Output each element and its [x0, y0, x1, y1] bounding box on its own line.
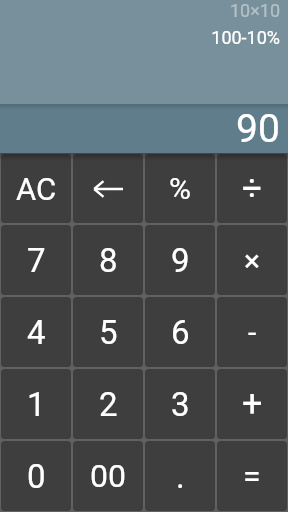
button[interactable]: Percent	[145, 154, 215, 223]
staticText: =	[243, 457, 261, 495]
staticText: 6	[171, 313, 190, 352]
staticText: +	[242, 383, 263, 425]
staticText: 2	[99, 385, 118, 424]
button[interactable]: 0	[1, 441, 71, 511]
staticText: 5	[99, 313, 118, 352]
staticText: 4	[27, 313, 46, 352]
staticText: 3	[171, 385, 190, 424]
button[interactable]: Minus	[217, 297, 287, 367]
button[interactable]: Multiply	[217, 225, 287, 295]
staticText: 90	[236, 106, 280, 152]
button[interactable]: 5	[73, 297, 143, 367]
button[interactable]: All clear	[1, 154, 71, 223]
button[interactable]: 7	[1, 225, 71, 295]
button[interactable]: 8	[73, 225, 143, 295]
staticText: 00	[90, 457, 126, 495]
staticText: 100-10%	[211, 27, 280, 48]
button[interactable]: Decimal point	[145, 441, 215, 511]
button[interactable]: Equals	[217, 441, 287, 511]
button[interactable]: 9	[145, 225, 215, 295]
staticText: 0	[27, 457, 46, 496]
button[interactable]: Double zero	[73, 441, 143, 511]
button[interactable]: 1	[1, 369, 71, 439]
button[interactable]: 3	[145, 369, 215, 439]
button[interactable]: 2	[73, 369, 143, 439]
staticText: ×	[244, 243, 261, 278]
staticText: ÷	[242, 168, 262, 209]
staticText: 9	[171, 241, 190, 280]
button[interactable]: Backspace	[73, 154, 143, 223]
staticText: AC	[16, 171, 57, 207]
staticText: 8	[99, 241, 118, 280]
staticText: %	[169, 171, 191, 206]
button[interactable]: Divide	[217, 154, 287, 223]
staticText: -	[248, 315, 257, 350]
staticText: 10×10	[229, 0, 280, 21]
staticText: 7	[27, 241, 46, 280]
staticText: .	[176, 457, 185, 496]
button[interactable]: 6	[145, 297, 215, 367]
button[interactable]: 4	[1, 297, 71, 367]
button[interactable]: Plus	[217, 369, 287, 439]
staticText: 1	[27, 385, 46, 424]
